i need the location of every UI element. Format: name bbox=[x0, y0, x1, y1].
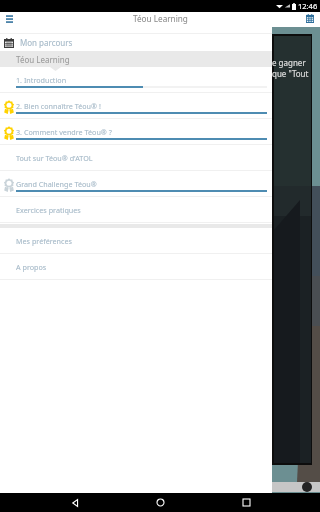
button[interactable]: Calendar bbox=[302, 12, 317, 27]
staticText: 2. Bien connaître Téou® ! bbox=[16, 101, 101, 111]
button[interactable]: Back bbox=[64, 493, 86, 512]
button[interactable]: Exercices pratiques bbox=[0, 197, 272, 223]
button[interactable]: Téou Learning bbox=[0, 51, 272, 67]
button[interactable]: 1. Introduction bbox=[0, 67, 272, 93]
staticText: Grand Challenge Téou® bbox=[16, 179, 97, 189]
staticText: Mon parcours bbox=[20, 37, 73, 48]
staticText: Exercices pratiques bbox=[16, 205, 81, 215]
button[interactable]: Tout sur Téou® d'ATOL bbox=[0, 145, 272, 171]
button[interactable]: Grand Challenge Téou® bbox=[0, 171, 272, 197]
staticText: Mes préférences bbox=[16, 236, 72, 246]
staticText: 3. Comment vendre Téou® ? bbox=[16, 127, 112, 137]
staticText: Téou Learning bbox=[16, 54, 70, 65]
staticText: que "Tout bbox=[272, 68, 309, 79]
staticText: 12:46 bbox=[298, 1, 318, 11]
staticText: 1. Introduction bbox=[16, 75, 67, 85]
staticText: Tout sur Téou® d'ATOL bbox=[16, 153, 93, 163]
button[interactable]: A propos bbox=[0, 254, 272, 280]
button[interactable]: More options bbox=[302, 482, 312, 492]
button[interactable]: Open navigation drawer bbox=[1, 12, 17, 27]
button[interactable]: Recent apps bbox=[235, 493, 257, 512]
button[interactable]: 3. Comment vendre Téou® ? bbox=[0, 119, 272, 145]
button[interactable]: Mes préférences bbox=[0, 228, 272, 254]
button[interactable]: Mon parcours bbox=[0, 34, 272, 51]
staticText: e gagner bbox=[272, 57, 306, 68]
staticText: Téou Learning bbox=[133, 13, 188, 24]
staticText: A propos bbox=[16, 262, 47, 272]
button[interactable]: 2. Bien connaître Téou® ! bbox=[0, 93, 272, 119]
button[interactable]: Home bbox=[149, 493, 171, 512]
